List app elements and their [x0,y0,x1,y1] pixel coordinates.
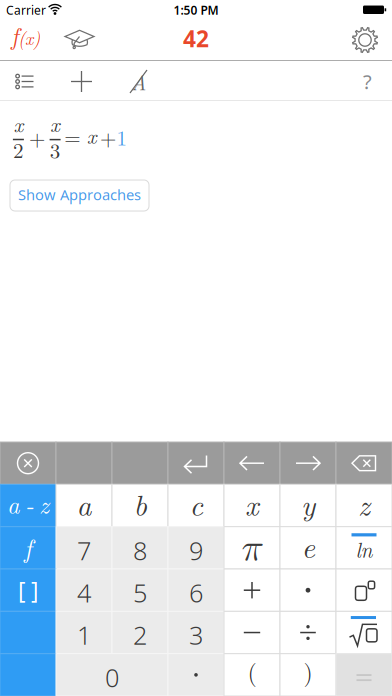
button[interactable]: a [56,484,112,527]
button[interactable]: 9 [168,527,224,569]
staticText: a - z [7,486,49,521]
button[interactable]: e [280,527,336,569]
staticText: 𝜋 [241,530,262,567]
button[interactable] [56,442,112,484]
button[interactable] [0,654,56,696]
staticText: 7 [77,533,91,567]
button[interactable]: Minus [224,611,280,654]
button[interactable]: New expression [71,71,92,92]
button[interactable] [112,442,168,484]
button[interactable]: 7 [56,527,112,569]
button[interactable]: x [224,484,280,527]
button[interactable]: f [0,527,56,569]
staticText: + [29,122,45,152]
button[interactable]: Move right [280,442,336,484]
button[interactable]: ln [336,527,392,569]
button[interactable]: History [15,73,34,89]
button[interactable]: 1 [56,611,112,654]
staticText: [ ] [18,575,38,605]
button[interactable]: Equals [336,654,392,696]
staticText: f [24,529,32,565]
staticText: b [133,483,146,524]
button[interactable]: 𝜋 [224,527,280,569]
button[interactable]: ( [224,654,280,696]
staticText: 9 [189,533,203,567]
staticText: = [64,121,80,151]
button[interactable]: [ ] [0,569,56,611]
staticText: A [131,67,146,96]
staticText: 2 [13,134,24,164]
button[interactable]: Learn [64,29,95,50]
button[interactable]: Decimal point [168,654,224,696]
staticText: Show Approaches [18,185,141,204]
button[interactable]: Help [363,68,372,95]
staticText: y [301,483,315,524]
staticText: x [13,108,23,138]
button[interactable]: c [168,484,224,527]
button[interactable]: Settings [351,26,379,54]
staticText: z [358,483,370,524]
staticText: x [87,120,97,150]
staticText: ) [303,654,312,688]
button[interactable]: Multiply [280,569,336,611]
button[interactable]: 6 [168,569,224,611]
staticText: 2 [133,618,147,652]
button[interactable]: b [112,484,168,527]
button[interactable]: Dismiss keyboard [0,442,56,484]
button[interactable]: a - z [0,484,56,527]
staticText: + [100,122,116,152]
staticText: x [245,483,259,524]
staticText: 3 [189,618,203,652]
button[interactable]: 2 [112,611,168,654]
button[interactable]: Clear [127,70,149,92]
staticText: 4 [77,576,91,609]
staticText: 42 [183,23,209,53]
staticText: a [76,483,91,524]
staticText: 1:50 PM [173,2,218,18]
staticText: 6 [189,576,203,609]
staticText: 1 [116,122,127,152]
button[interactable]: Plus [224,569,280,611]
button[interactable]: 8 [112,527,168,569]
staticText: f(x) [11,18,40,51]
button[interactable]: ) [280,654,336,696]
button[interactable]: Show Approaches [10,180,149,211]
button[interactable]: z [336,484,392,527]
staticText: 5 [133,576,147,609]
button[interactable]: Move left [224,442,280,484]
staticText: ( [247,654,256,688]
staticText: ? [363,68,372,95]
button[interactable]: Square root [336,611,392,654]
staticText: Carrier [6,2,46,18]
button[interactable]: Divide [280,611,336,654]
staticText: c [189,483,202,524]
button[interactable]: 0 [56,654,168,696]
staticText: 3 [50,135,61,165]
staticText: 0 [105,660,119,694]
button[interactable]: Home [11,23,40,56]
staticText: e [301,525,314,567]
button[interactable]: Return [168,442,224,484]
button[interactable]: Exponent [336,569,392,611]
staticText: 8 [133,533,147,567]
staticText: x [50,108,60,138]
button[interactable] [0,611,56,654]
button[interactable]: y [280,484,336,527]
staticText: ln [355,534,372,564]
button[interactable]: 3 [168,611,224,654]
staticText: 1 [77,618,91,652]
button[interactable]: 4 [56,569,112,611]
button[interactable]: 5 [112,569,168,611]
button[interactable]: Delete [336,442,392,484]
